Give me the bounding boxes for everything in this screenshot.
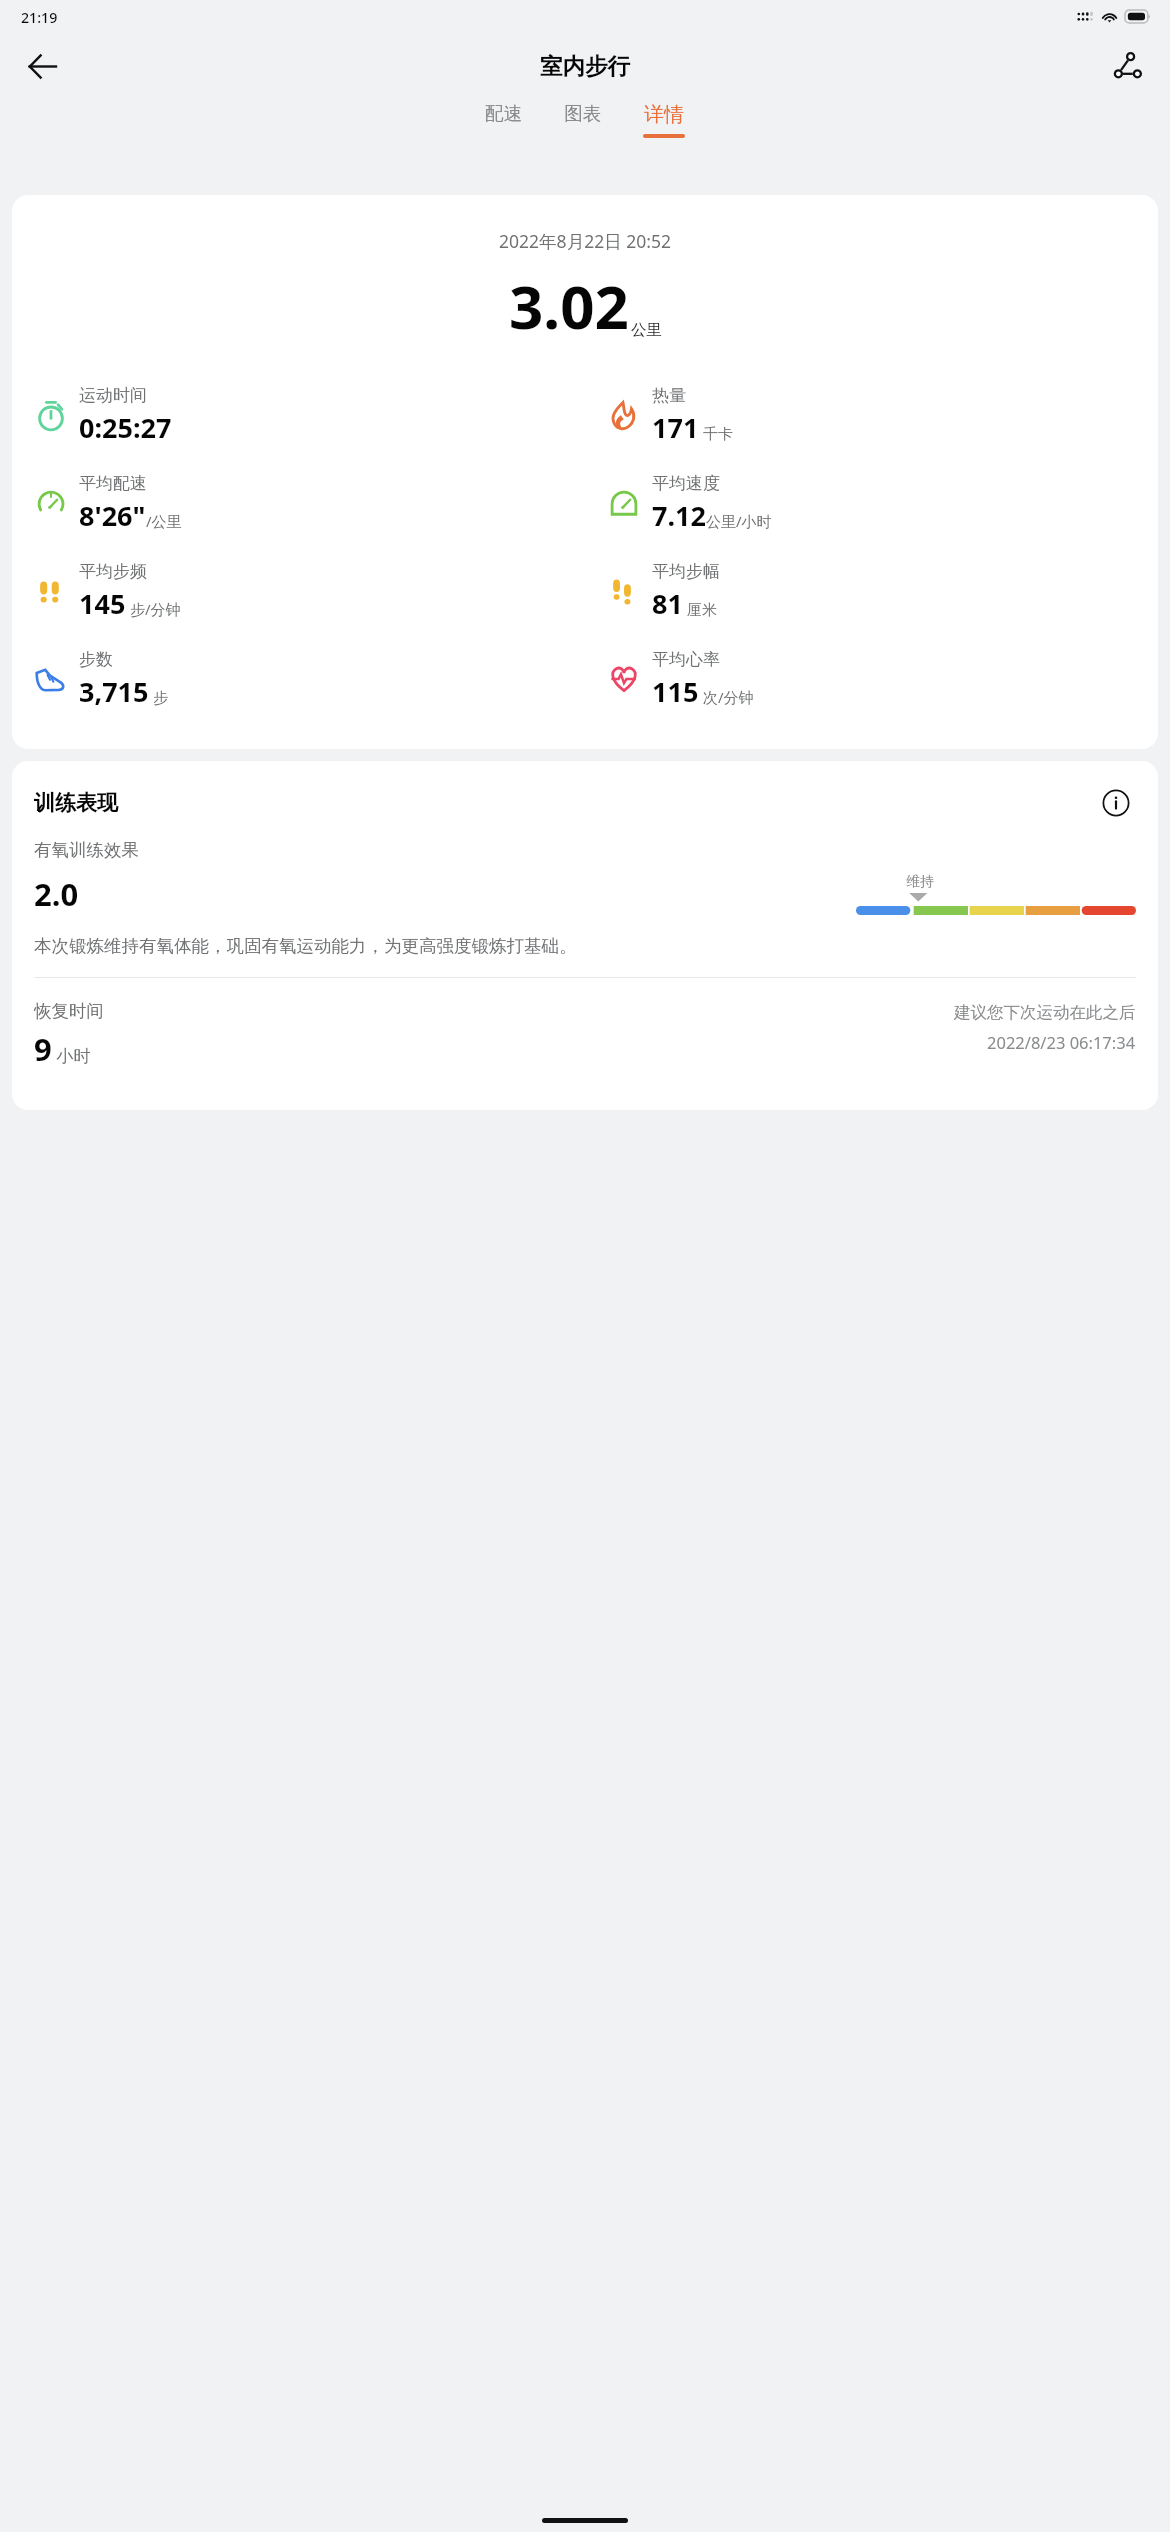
staticText: 171 (652, 409, 699, 446)
staticText: 2.0 (34, 873, 79, 915)
staticText: 千卡 (699, 423, 733, 443)
staticText: 次/分钟 (699, 687, 754, 707)
staticText: 厘米 (683, 599, 717, 619)
staticText: 室内步行 (540, 52, 630, 80)
staticText: 9 (34, 1028, 52, 1070)
staticText: 步 (149, 687, 168, 707)
button[interactable]: 平均速度 (585, 459, 1158, 547)
staticText: 恢复时间 (34, 1000, 104, 1022)
staticText: 步/分钟 (126, 599, 181, 619)
button[interactable]: Info (1096, 783, 1136, 823)
staticText: 平均步幅 (652, 561, 720, 582)
button[interactable]: 平均步幅 (585, 547, 1158, 635)
staticText: 训练表现 (34, 790, 118, 816)
staticText: 21:19 (21, 8, 58, 27)
staticText: 3.02 (509, 265, 629, 347)
button[interactable]: 步数 (12, 635, 585, 723)
staticText: 运动时间 (79, 385, 147, 406)
staticText: 3,715 (79, 673, 149, 710)
staticText: 0:25:27 (79, 409, 172, 446)
staticText: 平均步频 (79, 561, 147, 582)
button[interactable]: 配速 (471, 99, 536, 157)
staticText: 图表 (564, 102, 601, 125)
staticText: 维持 (906, 873, 934, 891)
staticText: 平均配速 (79, 473, 147, 494)
button[interactable]: 图表 (550, 99, 615, 157)
staticText: 公里/小时 (706, 511, 772, 531)
button[interactable]: 热量 (585, 371, 1158, 459)
staticText: 步数 (79, 649, 113, 670)
staticText: 81 (652, 585, 683, 622)
button[interactable]: 平均配速 (12, 459, 585, 547)
staticText: /公里 (146, 511, 182, 531)
staticText: 配速 (485, 102, 522, 125)
staticText: 平均速度 (652, 473, 720, 494)
button[interactable]: Back (14, 38, 70, 94)
button[interactable]: 平均步频 (12, 547, 585, 635)
staticText: 115 (652, 673, 699, 710)
staticText: 小时 (52, 1044, 91, 1067)
staticText: 有氧训练效果 (34, 839, 139, 861)
button[interactable]: 平均心率 (585, 635, 1158, 723)
staticText: 2022/8/23 06:17:34 (987, 1031, 1136, 1053)
staticText: 建议您下次运动在此之后 (954, 1002, 1136, 1023)
staticText: 公里 (631, 320, 662, 340)
button[interactable]: 详情 (629, 99, 699, 157)
button[interactable]: 运动时间 (12, 371, 585, 459)
staticText: 详情 (644, 102, 684, 127)
staticText: 本次锻炼维持有氧体能，巩固有氧运动能力，为更高强度锻炼打基础。 (34, 935, 577, 957)
staticText: 2022年8月22日 20:52 (12, 229, 1158, 253)
button[interactable]: Share (1100, 38, 1156, 94)
staticText: 7.12 (652, 497, 706, 534)
staticText: 平均心率 (652, 649, 720, 670)
staticText: 145 (79, 585, 126, 622)
staticText: 热量 (652, 385, 686, 406)
staticText: 8'26" (79, 497, 146, 534)
